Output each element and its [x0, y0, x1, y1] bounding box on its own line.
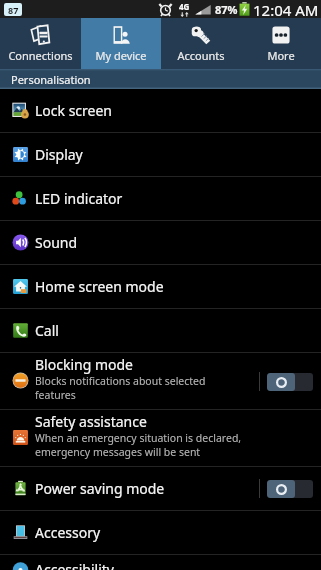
- button[interactable]: Display: [0, 133, 321, 176]
- button[interactable]: Accessory: [0, 511, 321, 554]
- staticText: Sound: [35, 233, 78, 252]
- button[interactable]: Toggle: [267, 480, 313, 498]
- staticText: Safety assistance: [35, 412, 147, 431]
- staticText: Power saving mode: [35, 479, 165, 498]
- button[interactable]: Power saving mode: [0, 467, 321, 510]
- staticText: Blocking mode: [35, 355, 133, 374]
- staticText: Blocks notifications about selected feat…: [35, 374, 206, 402]
- staticText: 87: [8, 4, 19, 16]
- button[interactable]: Toggle: [267, 373, 313, 391]
- staticText: 4G: [179, 1, 190, 12]
- staticText: Personalisation: [11, 72, 91, 87]
- staticText: When an emergency situation is declared,…: [35, 431, 242, 459]
- button[interactable]: My device: [81, 18, 161, 69]
- staticText: Home screen mode: [35, 277, 164, 296]
- staticText: Display: [35, 145, 83, 164]
- button[interactable]: Sound: [0, 221, 321, 264]
- staticText: Lock screen: [35, 101, 113, 120]
- staticText: Accounts: [177, 48, 225, 63]
- button[interactable]: Safety assistance: [0, 410, 321, 466]
- button[interactable]: LED indicator: [0, 177, 321, 220]
- staticText: Accessibility: [35, 560, 114, 570]
- button[interactable]: Connections: [0, 18, 81, 69]
- staticText: My device: [95, 48, 147, 63]
- button[interactable]: More: [241, 18, 321, 69]
- staticText: Accessory: [35, 523, 101, 542]
- button[interactable]: Accounts: [161, 18, 241, 69]
- button[interactable]: Home screen mode: [0, 265, 321, 308]
- staticText: Call: [35, 321, 59, 340]
- staticText: 87%: [215, 2, 238, 17]
- button[interactable]: Blocking mode: [0, 353, 321, 409]
- button[interactable]: Accessibility: [0, 555, 321, 570]
- staticText: 12:04 AM: [253, 0, 319, 18]
- button[interactable]: Call: [0, 309, 321, 352]
- staticText: Connections: [8, 48, 73, 63]
- button[interactable]: Lock screen: [0, 89, 321, 132]
- staticText: More: [267, 48, 295, 63]
- staticText: LED indicator: [35, 189, 123, 208]
